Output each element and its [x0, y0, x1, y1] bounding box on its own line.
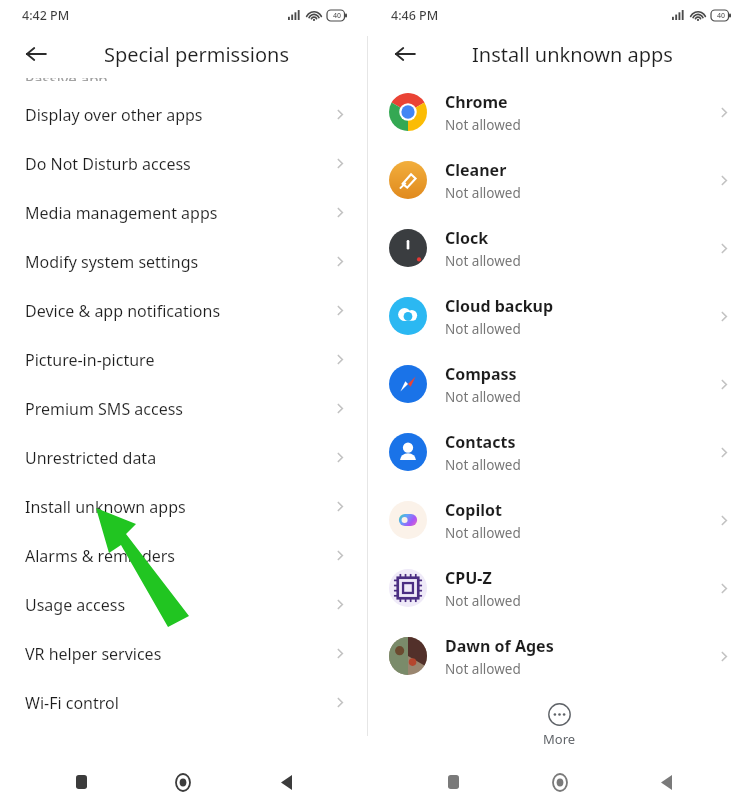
staticText: Do Not Disturb access [25, 153, 191, 175]
staticText: Not allowed [445, 592, 521, 610]
staticText: Chrome [445, 91, 508, 113]
staticText: 4:42 PM [22, 7, 70, 24]
staticText: Wi-Fi control [25, 692, 119, 714]
button[interactable]: Media management apps [0, 188, 366, 237]
button[interactable]: Cleaner [369, 146, 750, 214]
staticText: Not allowed [445, 456, 521, 474]
staticText: Cleaner [445, 159, 507, 181]
staticText: Passive app [25, 78, 108, 81]
button[interactable]: Compass [369, 350, 750, 418]
staticText: Not allowed [445, 116, 521, 134]
button[interactable]: Recent apps [59, 760, 103, 804]
staticText: Usage access [25, 594, 126, 616]
staticText: Copilot [445, 499, 502, 521]
staticText: 40 [333, 11, 342, 21]
staticText: Not allowed [445, 320, 521, 338]
staticText: Display over other apps [25, 104, 203, 126]
staticText: More [543, 730, 576, 748]
button[interactable]: Home [161, 760, 205, 804]
staticText: Clock [445, 227, 489, 249]
staticText: Not allowed [445, 388, 521, 406]
button[interactable]: Clock [369, 214, 750, 282]
button[interactable]: Premium SMS access [0, 384, 366, 433]
button[interactable]: Recent apps [431, 760, 475, 804]
button[interactable]: Dawn of Ages [369, 622, 750, 690]
button[interactable]: Home [538, 760, 582, 804]
button[interactable]: Contacts [369, 418, 750, 486]
button[interactable]: Copilot [369, 486, 750, 554]
button[interactable]: More [369, 700, 750, 751]
staticText: 4:46 PM [391, 7, 439, 24]
staticText: 40 [717, 11, 726, 21]
staticText: Special permissions [104, 41, 289, 68]
other: More [548, 703, 571, 726]
button[interactable]: Modify system settings [0, 237, 366, 286]
button[interactable]: CPU-Z [369, 554, 750, 622]
button[interactable]: Display over other apps [0, 90, 366, 139]
button[interactable]: Device & app notifications [0, 286, 366, 335]
staticText: Not allowed [445, 184, 521, 202]
staticText: Cloud backup [445, 295, 554, 317]
staticText: Not allowed [445, 660, 521, 678]
button[interactable]: Back [264, 760, 308, 804]
staticText: Picture-in-picture [25, 349, 155, 371]
button[interactable]: Picture-in-picture [0, 335, 366, 384]
staticText: Dawn of Ages [445, 635, 554, 657]
button[interactable]: Unrestricted data [0, 433, 366, 482]
staticText: Contacts [445, 431, 516, 453]
staticText: Not allowed [445, 524, 521, 542]
staticText: Media management apps [25, 202, 218, 224]
button[interactable]: Install unknown apps [0, 482, 366, 531]
button[interactable]: Alarms & reminders [0, 531, 366, 580]
button[interactable]: Wi-Fi control [0, 678, 366, 727]
button[interactable]: Back [644, 760, 688, 804]
button[interactable]: Do Not Disturb access [0, 139, 366, 188]
button[interactable]: Usage access [0, 580, 366, 629]
staticText: Compass [445, 363, 517, 385]
staticText: Premium SMS access [25, 398, 184, 420]
button[interactable]: Chrome [369, 78, 750, 146]
staticText: Device & app notifications [25, 300, 221, 322]
button[interactable]: VR helper services [0, 629, 366, 678]
staticText: Install unknown apps [472, 41, 673, 68]
staticText: Not allowed [445, 252, 521, 270]
button[interactable]: Cloud backup [369, 282, 750, 350]
staticText: Alarms & reminders [25, 545, 176, 567]
staticText: Install unknown apps [25, 496, 186, 518]
staticText: VR helper services [25, 643, 162, 665]
button[interactable]: Back [383, 32, 427, 76]
staticText: Modify system settings [25, 251, 199, 273]
button[interactable]: Back [14, 32, 58, 76]
staticText: Unrestricted data [25, 447, 157, 469]
staticText: CPU-Z [445, 567, 492, 589]
